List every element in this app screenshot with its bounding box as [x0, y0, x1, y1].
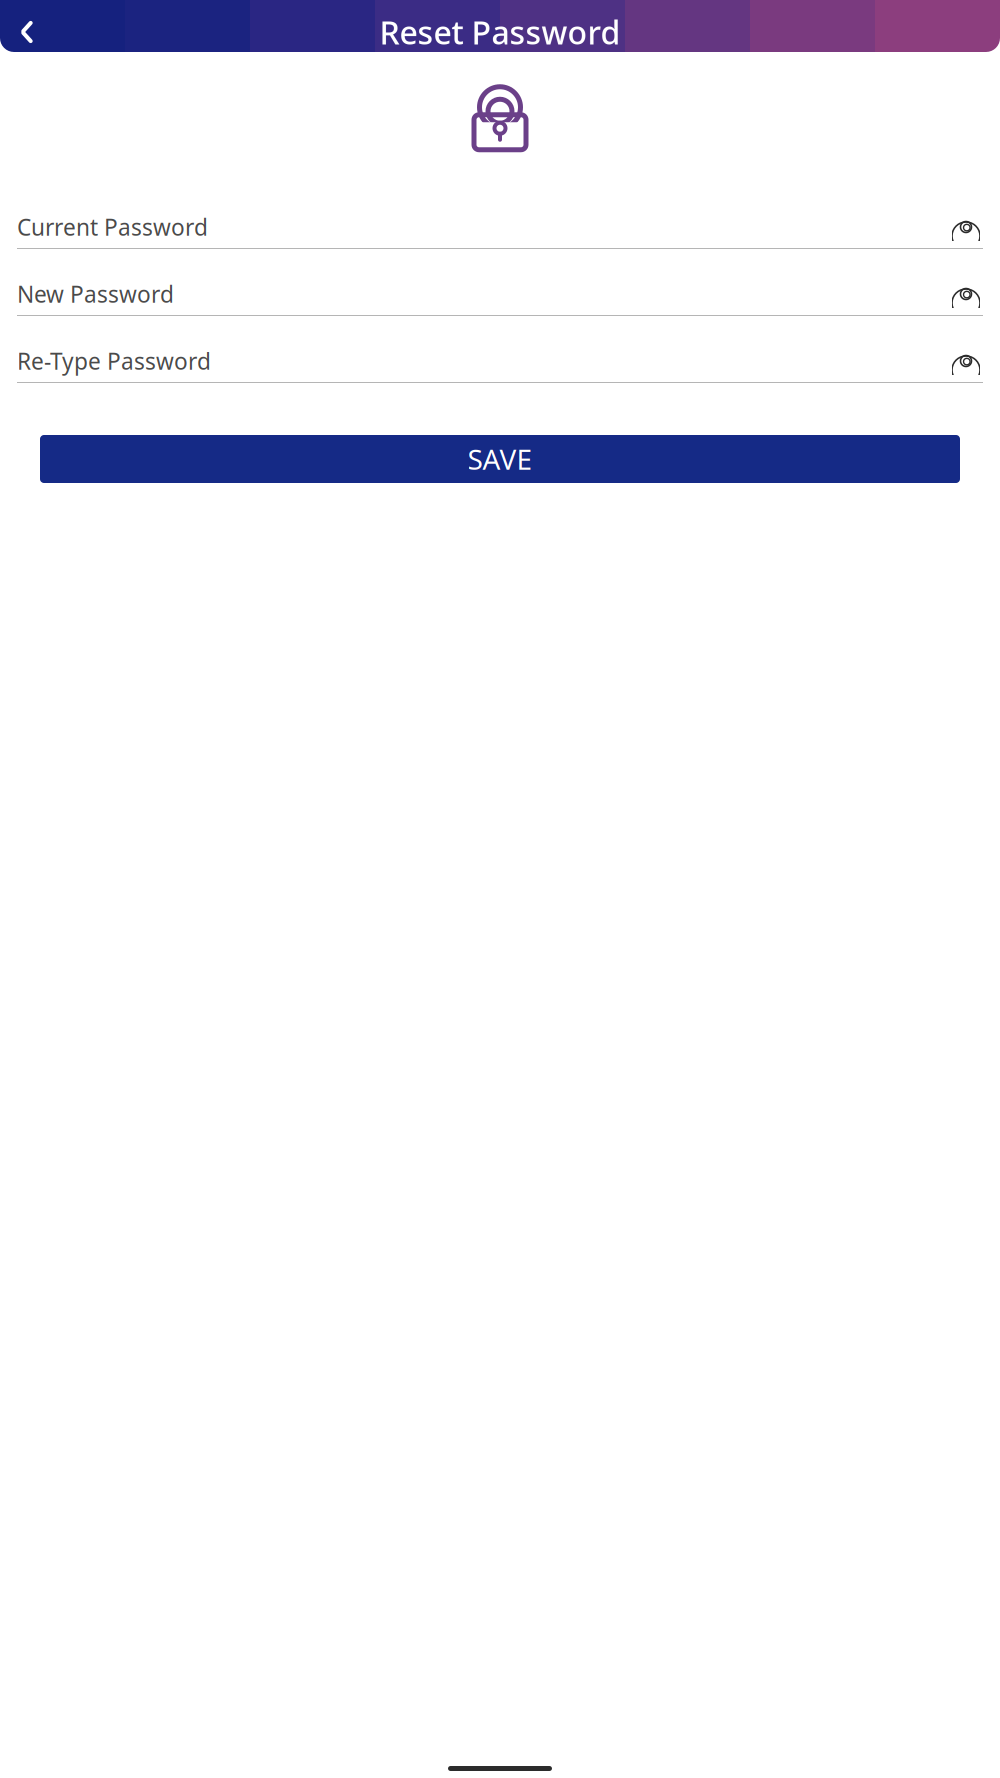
staticText: SAVE [467, 440, 532, 478]
staticText: Current Password [17, 212, 208, 242]
staticText: New Password [17, 279, 174, 309]
button[interactable]: Show Re-Type Password [949, 348, 983, 374]
button[interactable]: Back [0, 8, 54, 56]
button[interactable]: Show Current Password [949, 214, 983, 240]
button[interactable]: SAVE [40, 435, 960, 483]
staticText: Re-Type Password [17, 346, 211, 376]
staticText: Reset Password [379, 11, 620, 53]
button[interactable]: Show New Password [949, 281, 983, 307]
